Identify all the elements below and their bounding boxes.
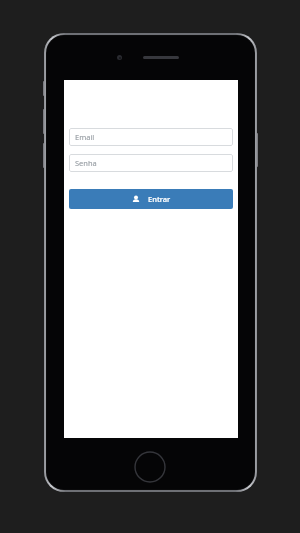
button[interactable]: Home [134,451,166,483]
staticText: Entrar [148,194,171,204]
staticText: Email [75,132,95,142]
staticText: Senha [75,158,97,168]
button[interactable]: Email [69,128,233,146]
button[interactable]: Entrar [69,189,233,209]
button[interactable]: Senha [69,154,233,172]
